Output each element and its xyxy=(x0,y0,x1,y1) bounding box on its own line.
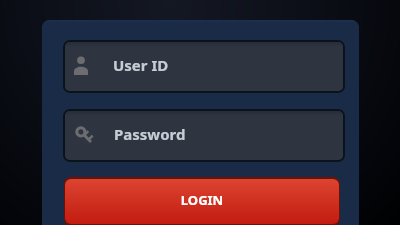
staticText: Password xyxy=(114,124,186,144)
staticText: User ID xyxy=(113,55,169,75)
staticText: LOGIN xyxy=(65,191,339,209)
button[interactable]: LOGIN xyxy=(64,177,340,225)
button[interactable]: User ID xyxy=(63,40,345,93)
button[interactable]: Password xyxy=(63,109,345,162)
